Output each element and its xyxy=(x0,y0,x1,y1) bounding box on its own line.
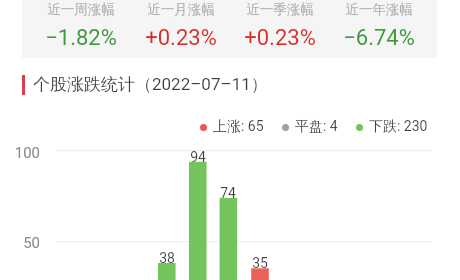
button[interactable]: 近一月涨幅 xyxy=(131,1,230,51)
staticText: 近一月涨幅 xyxy=(147,1,215,18)
staticText: −6.74% xyxy=(343,25,415,51)
staticText: 38 xyxy=(152,250,182,266)
staticText: 上涨: 65 xyxy=(213,118,264,136)
staticText: +0.23% xyxy=(244,25,316,51)
button[interactable]: 近一周涨幅 xyxy=(31,1,131,51)
staticText: 35 xyxy=(245,255,275,271)
staticText: 94 xyxy=(183,149,213,165)
staticText: 下跌: 230 xyxy=(369,118,428,136)
staticText: +0.23% xyxy=(145,25,217,51)
staticText: 50 xyxy=(0,234,40,252)
staticText: 近一年涨幅 xyxy=(345,1,413,18)
button[interactable]: 上涨: 65 xyxy=(200,118,264,136)
button[interactable]: 下跌: 230 xyxy=(356,118,428,136)
button[interactable]: 平盘: 4 xyxy=(282,118,338,136)
button[interactable]: 近一年涨幅 xyxy=(329,1,428,51)
staticText: −1.82% xyxy=(45,25,117,51)
button[interactable]: 近一季涨幅 xyxy=(230,1,329,51)
staticText: 100 xyxy=(0,144,40,162)
staticText: 近一季涨幅 xyxy=(246,1,314,18)
staticText: 平盘: 4 xyxy=(295,118,338,136)
staticText: 个股涨跌统计（2022–07–11） xyxy=(33,74,268,95)
button[interactable]: 个股涨跌统计（2022–07–11） xyxy=(22,74,268,95)
staticText: 74 xyxy=(213,185,243,201)
staticText: 近一周涨幅 xyxy=(47,1,115,18)
